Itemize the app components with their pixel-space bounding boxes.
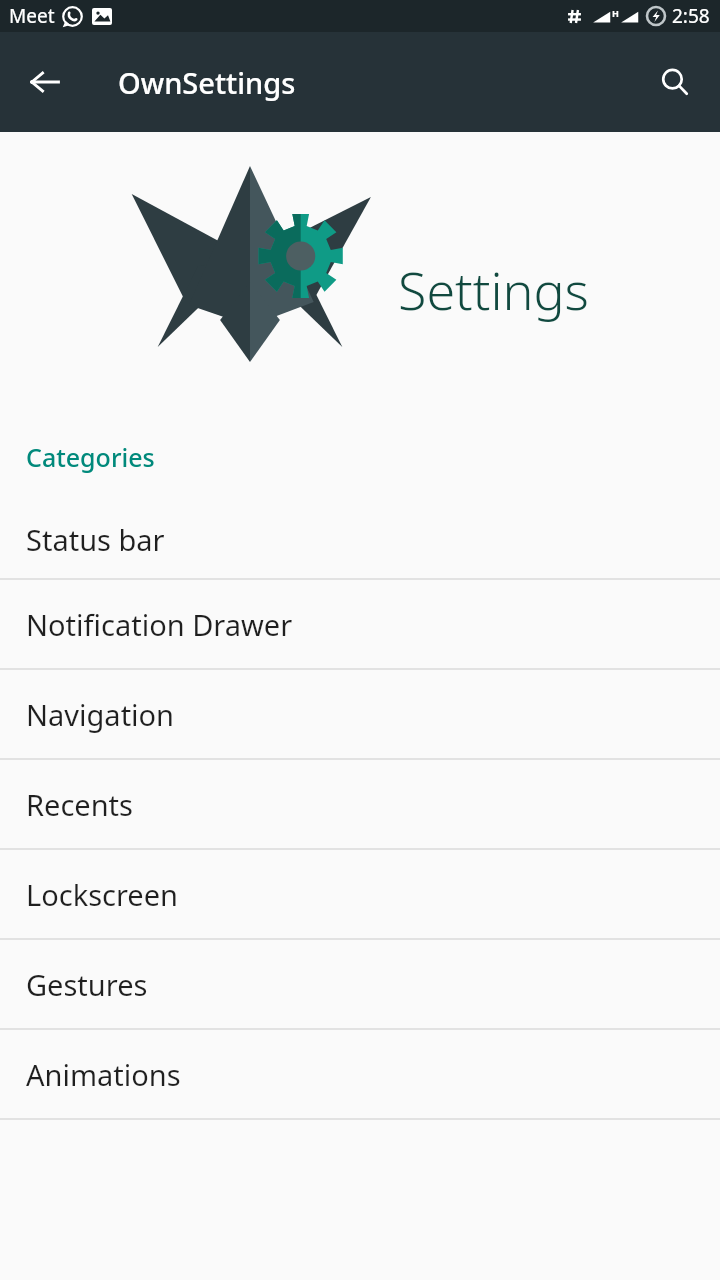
staticText: Notification Drawer xyxy=(26,605,293,644)
staticText: Lockscreen xyxy=(26,875,178,914)
button[interactable]: Lockscreen xyxy=(0,850,720,938)
staticText: Categories xyxy=(26,440,155,474)
staticText: Animations xyxy=(26,1055,181,1094)
staticText: OwnSettings xyxy=(118,63,296,102)
staticText: Navigation xyxy=(26,695,175,734)
button[interactable]: Back xyxy=(12,49,78,115)
staticText: Meet xyxy=(9,3,55,29)
button[interactable]: Recents xyxy=(0,760,720,848)
button[interactable]: Navigation xyxy=(0,670,720,758)
button[interactable]: Animations xyxy=(0,1030,720,1118)
staticText: Settings xyxy=(398,254,589,325)
staticText: H xyxy=(612,7,619,19)
staticText: Status bar xyxy=(26,520,165,559)
button[interactable]: Search xyxy=(644,51,706,113)
button[interactable]: Notification Drawer xyxy=(0,580,720,668)
staticText: 2:58 xyxy=(672,3,710,29)
staticText: Gestures xyxy=(26,965,148,1004)
button[interactable]: Gestures xyxy=(0,940,720,1028)
staticText: Recents xyxy=(26,785,133,824)
button[interactable]: Status bar xyxy=(0,500,720,578)
